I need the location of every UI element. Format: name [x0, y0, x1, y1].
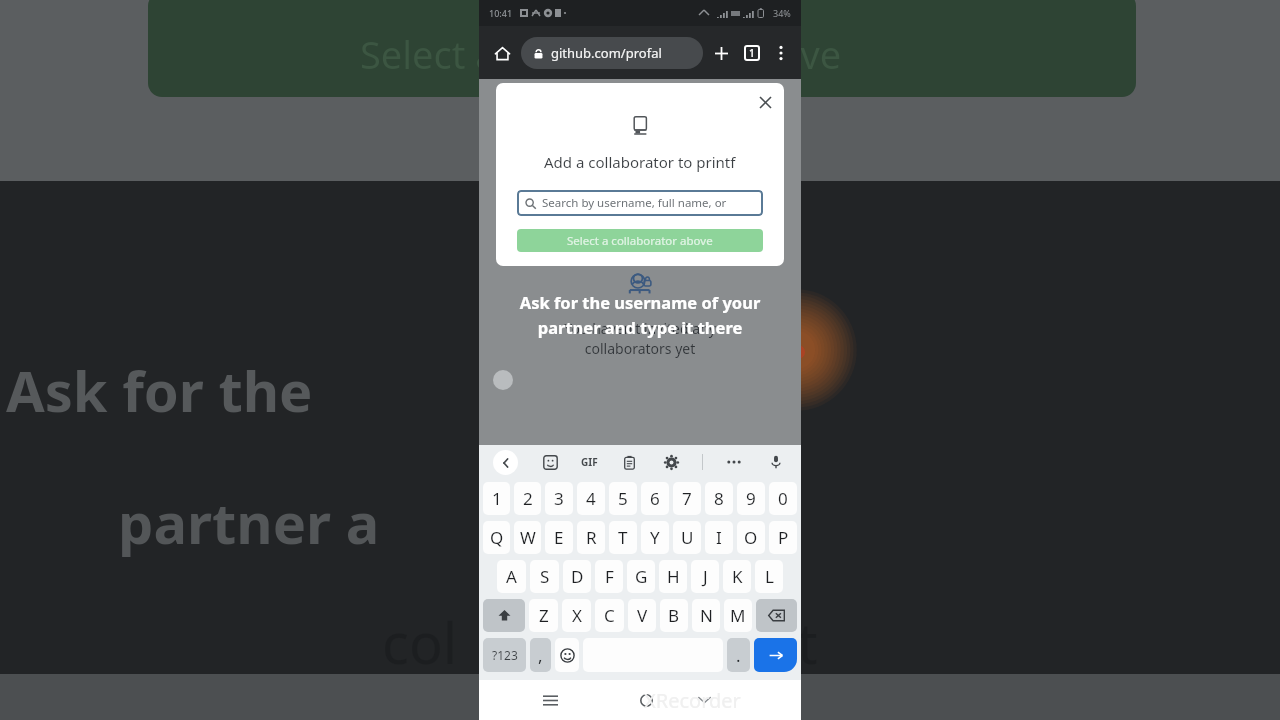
button[interactable]: More options [769, 41, 793, 65]
button[interactable]: Clipboard [618, 451, 640, 473]
staticText: Select a collaborator above [360, 28, 842, 80]
staticText: 1 [749, 46, 755, 60]
button[interactable]: Home [487, 38, 517, 68]
staticText: K [732, 565, 743, 588]
staticText: 8 [714, 487, 724, 510]
button[interactable]: V [628, 599, 656, 632]
button[interactable]: Shift [483, 599, 525, 632]
button[interactable]: , [530, 638, 551, 672]
staticText: F [605, 565, 614, 588]
staticText: M [730, 604, 746, 627]
button[interactable]: Backspace [756, 599, 797, 632]
staticText: T [618, 526, 628, 549]
button[interactable]: Select a collaborator above [517, 229, 763, 252]
staticText: 34% [773, 7, 791, 19]
button[interactable]: 9 [737, 482, 765, 515]
button[interactable]: github.com/profal [521, 37, 703, 69]
button[interactable]: C [595, 599, 624, 632]
staticText: Select a collaborator above [567, 233, 713, 249]
staticText: 3 [554, 487, 564, 510]
button[interactable]: Close [752, 89, 778, 115]
button[interactable]: 5 [609, 482, 637, 515]
staticText: V [637, 604, 648, 627]
button[interactable]: O [737, 521, 765, 554]
button[interactable]: N [692, 599, 720, 632]
button[interactable]: Search by username, full name, or email [517, 190, 763, 216]
button[interactable]: Enter [754, 638, 797, 672]
button[interactable]: Settings [660, 451, 682, 473]
staticText: Y [650, 526, 660, 549]
button[interactable]: Y [641, 521, 669, 554]
staticText: Ask for the username of your partner and… [479, 291, 801, 339]
button[interactable]: D [563, 560, 591, 593]
staticText: L [765, 565, 774, 588]
button[interactable]: Collapse [689, 685, 719, 715]
staticText: 0 [778, 487, 788, 510]
button[interactable]: M [724, 599, 752, 632]
button[interactable]: R [577, 521, 605, 554]
button[interactable]: 3 [545, 482, 573, 515]
button[interactable]: T [609, 521, 637, 554]
staticText: 4 [586, 487, 596, 510]
button[interactable]: A [497, 560, 526, 593]
button[interactable]: Voice input [765, 451, 787, 473]
button[interactable]: More [723, 451, 745, 473]
button[interactable]: Back [493, 450, 518, 475]
button[interactable]: I [705, 521, 733, 554]
button[interactable]: Q [483, 521, 510, 554]
staticText: github.com/profal [551, 44, 662, 62]
button[interactable]: Tabs [738, 39, 766, 67]
staticText: , [538, 644, 543, 667]
button[interactable]: GIF [581, 455, 598, 469]
button[interactable]: S [530, 560, 559, 593]
button[interactable]: New tab [707, 39, 735, 67]
staticText: 5 [618, 487, 628, 510]
button[interactable]: X [562, 599, 591, 632]
staticText: I [716, 526, 722, 549]
button[interactable]: E [545, 521, 573, 554]
staticText: W [520, 526, 536, 549]
staticText: ?123 [492, 647, 518, 663]
button[interactable]: H [659, 560, 687, 593]
button[interactable]: Z [529, 599, 558, 632]
button[interactable]: 4 [577, 482, 605, 515]
staticText: H [667, 565, 680, 588]
button[interactable]: Emoji [555, 638, 579, 672]
button[interactable]: Menu [535, 685, 565, 715]
staticText: 6 [650, 487, 660, 510]
button[interactable]: . [727, 638, 750, 672]
button[interactable]: 8 [705, 482, 733, 515]
staticText: col yet [382, 604, 818, 680]
staticText: GIF [581, 455, 598, 469]
button[interactable]: J [691, 560, 719, 593]
staticText: R [586, 526, 597, 549]
button[interactable]: ?123 [483, 638, 526, 672]
button[interactable]: 7 [673, 482, 701, 515]
staticText: . [736, 644, 741, 667]
staticText: partner a e it there [118, 484, 747, 560]
button[interactable]: 2 [514, 482, 541, 515]
staticText: G [635, 565, 648, 588]
staticText: E [554, 526, 564, 549]
staticText: X [572, 604, 582, 627]
button[interactable]: 6 [641, 482, 669, 515]
button[interactable]: W [514, 521, 541, 554]
staticText: Add a collaborator to printf [544, 152, 736, 172]
staticText: You haven't invited any collaborators ye… [479, 319, 801, 359]
button[interactable]: B [660, 599, 688, 632]
staticText: XRecorder [644, 687, 741, 714]
button[interactable]: Stickers [539, 451, 561, 473]
button[interactable]: Home [631, 685, 661, 715]
button[interactable]: L [755, 560, 783, 593]
button[interactable]: K [723, 560, 751, 593]
staticText: B [668, 604, 680, 627]
button[interactable]: 1 [483, 482, 510, 515]
button[interactable]: F [595, 560, 623, 593]
button[interactable]: G [627, 560, 655, 593]
staticText: 1 [492, 487, 502, 510]
button[interactable]: 0 [769, 482, 797, 515]
button[interactable]: U [673, 521, 701, 554]
button[interactable]: P [769, 521, 797, 554]
staticText: Q [490, 526, 504, 549]
